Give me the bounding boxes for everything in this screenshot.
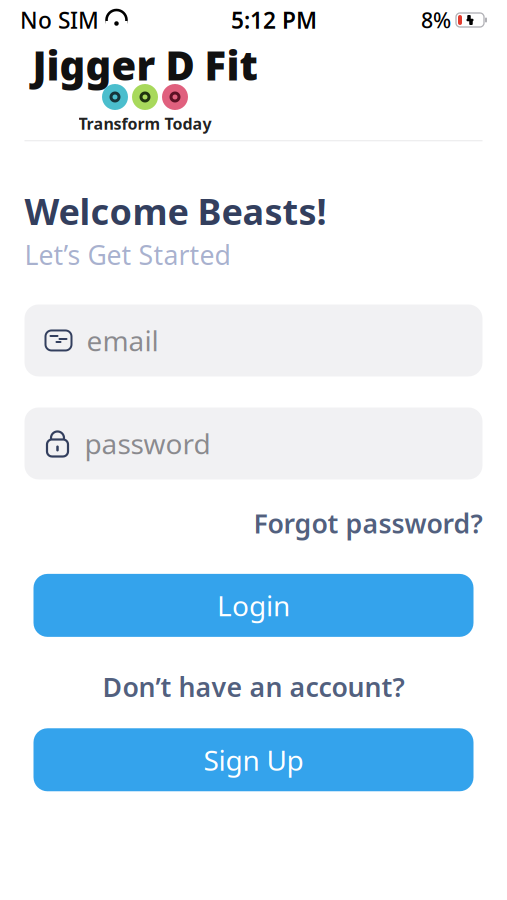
staticText: Let’s Get Started xyxy=(24,237,230,272)
staticText: Transform Today xyxy=(78,113,211,134)
button[interactable]: Forgot password? xyxy=(253,499,482,547)
button[interactable]: Sign Up xyxy=(33,728,473,791)
staticText: Welcome Beasts! xyxy=(24,187,326,235)
staticText: Forgot password? xyxy=(253,505,482,541)
staticText: Sign Up xyxy=(203,741,303,778)
staticText: 5:12 PM xyxy=(231,5,317,35)
staticText: Login xyxy=(217,587,290,624)
staticText: password xyxy=(84,425,210,462)
staticText: Jigger D Fit xyxy=(32,38,257,91)
staticText: 8% xyxy=(421,6,451,34)
staticText: email xyxy=(86,322,158,359)
button[interactable]: Login xyxy=(33,574,473,637)
staticText: Don’t have an account? xyxy=(102,669,404,704)
staticText: No SIM xyxy=(20,5,99,35)
